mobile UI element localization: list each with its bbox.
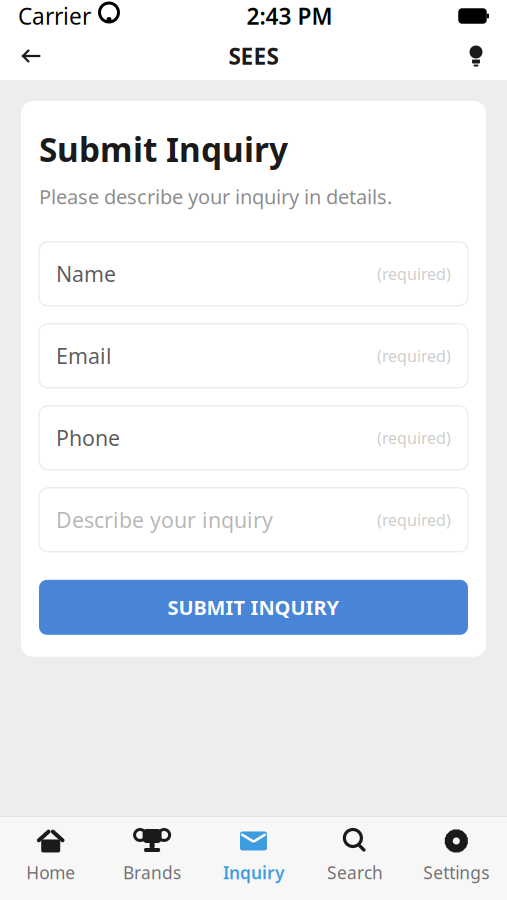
staticText: 2:43 PM <box>246 1 332 31</box>
staticText: (required) <box>377 345 451 366</box>
staticText: (required) <box>377 427 451 448</box>
button[interactable]: Settings <box>406 826 507 886</box>
button[interactable]: Search <box>304 826 406 886</box>
staticText: Submit Inquiry <box>39 127 288 171</box>
button[interactable]: Back <box>8 33 54 79</box>
staticText: Phone <box>56 424 120 452</box>
staticText: Please describe your inquiry in details. <box>39 183 392 210</box>
staticText: (required) <box>377 509 451 530</box>
staticText: Email <box>56 342 112 370</box>
staticText: Search <box>327 861 383 884</box>
staticText: Name <box>56 260 116 288</box>
button[interactable]: Home <box>0 826 101 886</box>
staticText: Inquiry <box>223 861 284 884</box>
staticText: SEES <box>228 41 278 71</box>
staticText: Describe your inquiry <box>56 506 273 534</box>
staticText: Settings <box>423 861 489 884</box>
staticText: (required) <box>377 263 451 284</box>
button[interactable]: Inquiry <box>203 826 304 886</box>
button[interactable]: SUBMIT INQUIRY <box>39 580 468 635</box>
staticText: Brands <box>123 861 181 884</box>
button[interactable]: Brands <box>101 826 203 886</box>
staticText: Home <box>26 861 75 884</box>
button[interactable]: Tips <box>453 33 499 79</box>
staticText: Carrier <box>18 1 91 31</box>
staticText: SUBMIT INQUIRY <box>167 594 339 621</box>
